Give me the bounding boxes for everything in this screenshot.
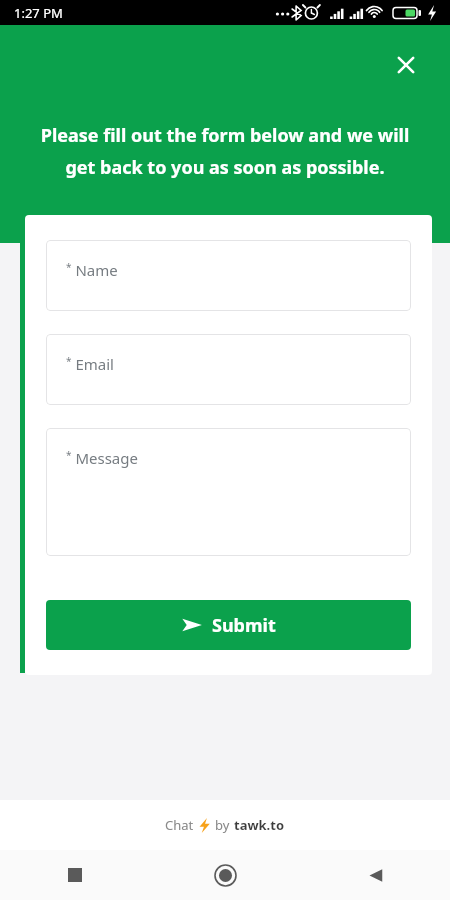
staticText: Submit xyxy=(212,613,276,638)
staticText: * Name xyxy=(66,260,118,280)
button[interactable]: Close xyxy=(384,43,428,87)
staticText: 1:27 PM xyxy=(14,4,63,22)
staticText: * Message xyxy=(66,448,138,468)
button[interactable]: * Email xyxy=(46,334,411,405)
staticText: * Email xyxy=(66,354,114,374)
staticText: tawk.to xyxy=(234,816,285,834)
button[interactable]: Back xyxy=(300,850,450,900)
button[interactable]: * Message xyxy=(46,428,411,556)
button[interactable]: * Name xyxy=(46,240,411,311)
staticText: by xyxy=(215,816,230,834)
button[interactable]: Recents xyxy=(0,850,150,900)
staticText: Please fill out the form below and we wi… xyxy=(24,123,426,179)
staticText: Chat xyxy=(165,816,194,834)
button[interactable]: Chat xyxy=(0,800,450,850)
button[interactable]: Submit xyxy=(46,600,411,650)
button[interactable]: Home xyxy=(150,850,300,900)
